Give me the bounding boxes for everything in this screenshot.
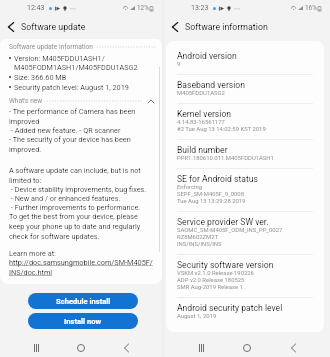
staticText: Build number (177, 145, 228, 155)
button[interactable]: Android version (166, 46, 324, 74)
button[interactable]: Build number (166, 140, 324, 168)
button[interactable]: Service provider SW ver. (166, 212, 324, 254)
staticText: Security patch level: August 1, 2019 (14, 83, 129, 92)
staticText: Baseband version (177, 80, 245, 90)
staticText: - Device stability improvements, bug fix… (9, 185, 147, 194)
staticText: SAOMC_SM-M405F_ODM_INS_PP_0027 (177, 227, 283, 234)
staticText: Security software version (177, 260, 274, 270)
button[interactable]: Home (72, 339, 90, 357)
button[interactable]: Baseband version (166, 75, 324, 103)
button[interactable]: Recents (192, 339, 210, 357)
staticText: To get the best from your device, please… (9, 212, 155, 241)
staticText: http://doc.samsungmobile.com/SM-M405F/IN… (9, 258, 155, 277)
button[interactable]: Back (117, 339, 135, 357)
staticText: - The security of your device has been i… (9, 135, 155, 154)
staticText: M405FDDU1ASG2 (177, 90, 225, 97)
staticText: - Added new feature. - QR scanner (9, 126, 121, 135)
button[interactable]: Collapse (147, 97, 155, 105)
staticText: ADP v2.0 Release 180525 (177, 277, 245, 284)
staticText: 12% (137, 4, 149, 12)
staticText: - New and / or enhanced features. (9, 194, 121, 203)
staticText: What's new (9, 97, 43, 105)
staticText: SE for Android status (177, 174, 258, 184)
button[interactable]: Recents (27, 339, 45, 357)
staticText: A software update can include, but is no… (9, 166, 155, 185)
staticText: INS/INS/INS/INS (177, 241, 222, 248)
button[interactable]: Install now (28, 313, 138, 329)
staticText: 13:23 (191, 4, 209, 12)
button[interactable]: Home (238, 339, 256, 357)
staticText: M405FODM1ASH1/M405FDDU1ASG2 (14, 63, 138, 72)
staticText: PPR1.180610.011.M405FDDU1ASH1 (177, 155, 274, 162)
button[interactable]: Navigate up (169, 19, 181, 35)
staticText: VSKM v2.1.0 Release 190226 (177, 270, 254, 277)
staticText: 4.14.83-16561177 (177, 119, 225, 126)
staticText: 16% (305, 4, 317, 12)
button[interactable]: Schedule install (28, 293, 138, 309)
button[interactable]: Security software version (166, 255, 324, 297)
button[interactable]: Kernel version (166, 104, 324, 139)
staticText: Version: M405FDDU1ASH1/ (14, 54, 105, 63)
staticText: Enforcing (177, 184, 203, 191)
staticText: Software information (185, 22, 268, 32)
staticText: Android version (177, 51, 237, 61)
staticText: Software update information (9, 43, 93, 51)
staticText: Service provider SW ver. (177, 217, 269, 227)
staticText: Kernel version (177, 109, 232, 119)
staticText: Android security patch level (177, 303, 283, 313)
staticText: #2 Tue Aug 13 14:02:59 KST 2019 (177, 126, 266, 133)
staticText: 12:43 (27, 4, 45, 12)
button[interactable]: Android security patch level (166, 298, 324, 326)
staticText: Tue Aug 13 13:29:28 2019 (177, 198, 246, 205)
staticText: Schedule install (56, 297, 111, 306)
button[interactable]: Back (284, 339, 302, 357)
staticText: - Further improvements to performance. (9, 203, 141, 212)
button[interactable]: SE for Android status (166, 169, 324, 211)
staticText: Learn more at: (9, 249, 56, 258)
staticText: Install now (64, 317, 102, 326)
staticText: RZ8M602ZM2T (177, 234, 219, 241)
staticText: SEPF_SM-M405F_9_0008 (177, 191, 244, 198)
staticText: SMR Aug-2019 Release 1 (177, 284, 243, 291)
staticText: Size: 366.60 MB (14, 73, 67, 82)
button[interactable]: Navigate up (5, 19, 17, 35)
staticText: Software update (21, 22, 86, 32)
staticText: - The performance of Camera has been imp… (9, 107, 155, 126)
staticText: August 1, 2019 (177, 313, 217, 320)
staticText: 9 (177, 61, 181, 68)
